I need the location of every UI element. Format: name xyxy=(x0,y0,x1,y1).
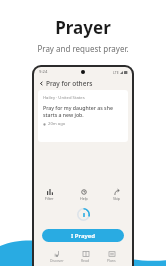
staticText: 20m ago xyxy=(48,121,66,127)
staticText: Pray and request prayer. xyxy=(37,43,129,54)
button[interactable]: Hailey · United States xyxy=(38,90,128,142)
other: Read xyxy=(83,251,89,257)
button[interactable]: Discover xyxy=(49,250,65,264)
button[interactable]: I Prayed xyxy=(42,229,124,242)
staticText: I Prayed xyxy=(71,232,96,240)
button[interactable]: Plans xyxy=(106,250,117,264)
staticText: Hailey · United States xyxy=(43,95,85,101)
other: Help xyxy=(81,189,87,195)
staticText: Pray for my daughter as she starts a new… xyxy=(43,104,123,118)
staticText: Prayer xyxy=(55,16,111,39)
button[interactable]: Read xyxy=(80,250,91,264)
staticText: LTE xyxy=(113,70,119,75)
button[interactable]: Help xyxy=(79,188,89,202)
other: Discover xyxy=(54,251,60,257)
staticText: Help xyxy=(80,196,88,201)
other: Back xyxy=(39,81,44,86)
staticText: Pray for others xyxy=(46,79,93,88)
button[interactable]: Back xyxy=(34,77,132,90)
staticText: 9:24 xyxy=(39,69,48,75)
other: Share xyxy=(114,189,120,195)
staticText: Skip xyxy=(113,196,121,201)
other: Plans xyxy=(109,251,115,257)
staticText: Filter xyxy=(45,196,54,201)
button[interactable]: Filter xyxy=(44,188,55,202)
staticText: Read xyxy=(81,258,90,263)
staticText: Plans xyxy=(107,258,116,263)
other: Filter xyxy=(47,189,53,195)
button[interactable]: Timer xyxy=(77,208,90,221)
button[interactable]: Share xyxy=(112,188,122,202)
staticText: Discover xyxy=(50,258,64,263)
